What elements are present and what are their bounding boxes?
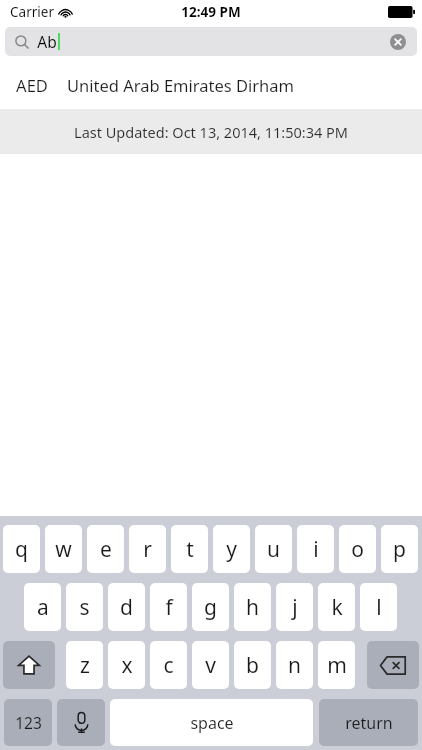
button[interactable]: x [108,641,145,689]
button[interactable]: Clear search [387,31,409,53]
button[interactable]: l [360,583,397,631]
button[interactable]: s [66,583,103,631]
button[interactable]: b [234,641,271,689]
staticText: a [37,593,49,622]
staticText: t [186,535,194,564]
staticText: r [143,535,152,564]
staticText: s [79,593,90,622]
button[interactable]: j [276,583,313,631]
button[interactable]: o [339,525,376,573]
staticText: Ab [37,31,57,52]
staticText: z [80,651,90,680]
staticText: b [246,651,259,680]
button[interactable]: d [108,583,145,631]
staticText: v [205,651,216,680]
button[interactable]: 123 [4,699,52,746]
staticText: q [15,535,28,564]
button[interactable]: AED [0,60,422,109]
button[interactable]: q [3,525,40,573]
button[interactable]: a [24,583,61,631]
button[interactable]: k [318,583,355,631]
button[interactable]: t [171,525,208,573]
button[interactable]: w [45,525,82,573]
staticText: Last Updated: Oct 13, 2014, 11:50:34 PM [74,122,348,142]
staticText: w [55,535,72,564]
staticText: m [327,651,347,680]
staticText: d [120,593,133,622]
button[interactable]: v [192,641,229,689]
button[interactable]: return [319,699,418,746]
staticText: Carrier [10,3,54,21]
button[interactable]: n [276,641,313,689]
button[interactable]: z [66,641,103,689]
staticText: k [331,593,343,622]
staticText: i [313,535,319,564]
staticText: u [267,535,280,564]
button[interactable]: e [87,525,124,573]
button[interactable]: c [150,641,187,689]
staticText: h [246,593,259,622]
staticText: 12:49 PM [181,3,241,21]
staticText: United Arab Emirates Dirham [67,74,294,96]
staticText: return [345,712,393,734]
staticText: x [121,651,133,680]
button[interactable]: h [234,583,271,631]
staticText: c [163,651,174,680]
button[interactable]: y [213,525,250,573]
staticText: space [190,712,234,734]
staticText: n [288,651,301,680]
button[interactable]: f [150,583,187,631]
staticText: l [376,593,382,622]
staticText: e [100,535,112,564]
button[interactable]: Ab [5,27,417,56]
button[interactable]: Shift [3,641,55,689]
button[interactable]: Backspace [367,641,419,689]
staticText: f [165,593,173,622]
staticText: j [292,593,298,622]
staticText: 123 [15,712,42,733]
button[interactable]: m [318,641,355,689]
button[interactable]: u [255,525,292,573]
button[interactable]: g [192,583,229,631]
button[interactable]: r [129,525,166,573]
staticText: AED [16,74,48,96]
button[interactable]: Dictation [57,699,105,746]
staticText: p [393,535,406,564]
button[interactable]: i [297,525,334,573]
button[interactable]: p [381,525,418,573]
staticText: o [351,535,364,564]
button[interactable]: space [110,699,313,746]
staticText: g [204,593,217,622]
staticText: y [226,535,237,564]
